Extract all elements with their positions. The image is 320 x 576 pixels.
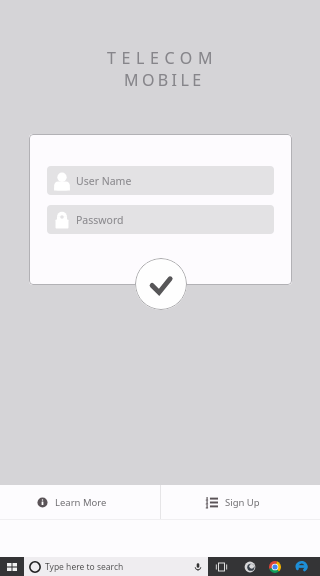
button[interactable]: Type here to search bbox=[24, 557, 208, 576]
staticText: Sign Up bbox=[225, 496, 260, 509]
button[interactable]: Password bbox=[47, 205, 274, 234]
button[interactable]: User Name bbox=[47, 166, 274, 195]
staticText: User Name bbox=[76, 174, 132, 188]
button[interactable]: Google Chrome bbox=[265, 557, 284, 576]
staticText: Learn More bbox=[55, 496, 107, 509]
button[interactable]: Cortana bbox=[240, 557, 259, 576]
button[interactable]: Task View bbox=[212, 557, 231, 576]
staticText: TELECOM bbox=[107, 47, 219, 69]
staticText: MOBILE bbox=[124, 69, 205, 91]
button[interactable]: Start bbox=[0, 557, 24, 576]
staticText: Password bbox=[76, 213, 124, 227]
button[interactable]: Microsoft Edge bbox=[292, 557, 311, 576]
button[interactable]: Learn More bbox=[0, 485, 160, 519]
button[interactable]: Sign Up bbox=[160, 485, 320, 519]
staticText: Type here to search bbox=[45, 561, 124, 573]
button[interactable]: Sign In bbox=[135, 258, 187, 310]
